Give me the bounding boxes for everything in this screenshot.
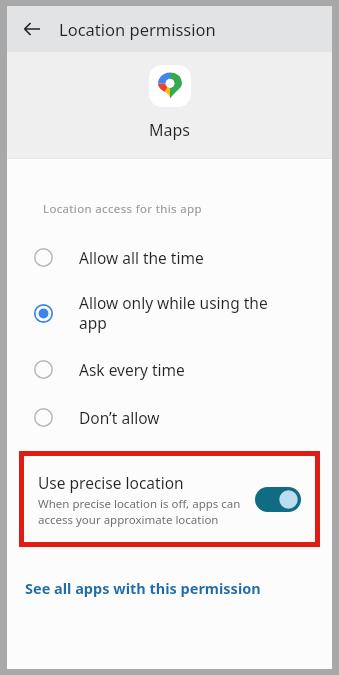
staticText: Allow only while using the app (79, 292, 294, 334)
button[interactable] (255, 487, 301, 512)
staticText: Use precise location (38, 472, 184, 493)
button[interactable]: Ask every time (7, 345, 332, 393)
staticText: Location permission (59, 18, 216, 40)
button[interactable]: Don’t allow (7, 393, 332, 441)
button[interactable]: Back (15, 12, 49, 46)
other: Use precise location toggle (255, 487, 301, 512)
staticText: Allow all the time (79, 247, 204, 268)
staticText: Maps (149, 119, 190, 141)
staticText: Location access for this app (43, 201, 202, 217)
staticText: See all apps with this permission (25, 578, 261, 598)
staticText: When precise location is off, apps can a… (38, 496, 247, 527)
button[interactable]: Use precise location (24, 456, 315, 542)
button[interactable]: See all apps with this permission (7, 571, 332, 605)
staticText: Don’t allow (79, 407, 160, 428)
button[interactable]: Allow all the time (7, 233, 332, 281)
button[interactable]: Allow only while using the app (7, 281, 332, 345)
staticText: Ask every time (79, 359, 185, 380)
